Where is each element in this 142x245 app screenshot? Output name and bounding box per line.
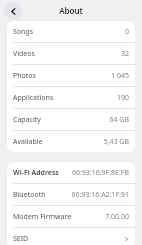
button[interactable]: SEID [7,228,135,245]
button[interactable]: Photos [7,65,135,87]
button[interactable]: Songs [7,21,135,43]
staticText: Wi-Fi Address [13,168,59,178]
staticText: Capacity [13,115,41,125]
staticText: Photos [13,71,36,81]
staticText: About [59,5,83,16]
staticText: Modem Firmware [13,212,72,222]
button[interactable]: Applications [7,87,135,109]
staticText: 5,43 GB [103,137,129,147]
button[interactable]: Videos [7,43,135,65]
staticText: Songs [13,27,34,37]
button[interactable]: Modem Firmware [7,206,135,228]
button[interactable]: Bluetooth [7,184,135,206]
staticText: Applications [13,93,54,103]
staticText: 7.00.00 [105,212,129,222]
button[interactable]: Back [4,2,22,20]
button[interactable]: Wi-Fi Address [7,162,135,184]
staticText: 60:93:16:A2:1F:91 [71,190,129,200]
staticText: 190 [116,93,129,103]
button[interactable]: Available [7,131,135,152]
staticText: 60:93:16:9F:8E:FB [71,168,129,178]
staticText: 64 GB [109,115,129,125]
staticText: Videos [13,49,35,59]
staticText: 1 045 [111,71,129,81]
staticText: Bluetooth [13,190,46,200]
staticText: 32 [120,49,129,59]
staticText: 0 [124,27,129,37]
staticText: Available [13,137,43,147]
button[interactable]: Capacity [7,109,135,131]
staticText: SEID [13,234,29,244]
